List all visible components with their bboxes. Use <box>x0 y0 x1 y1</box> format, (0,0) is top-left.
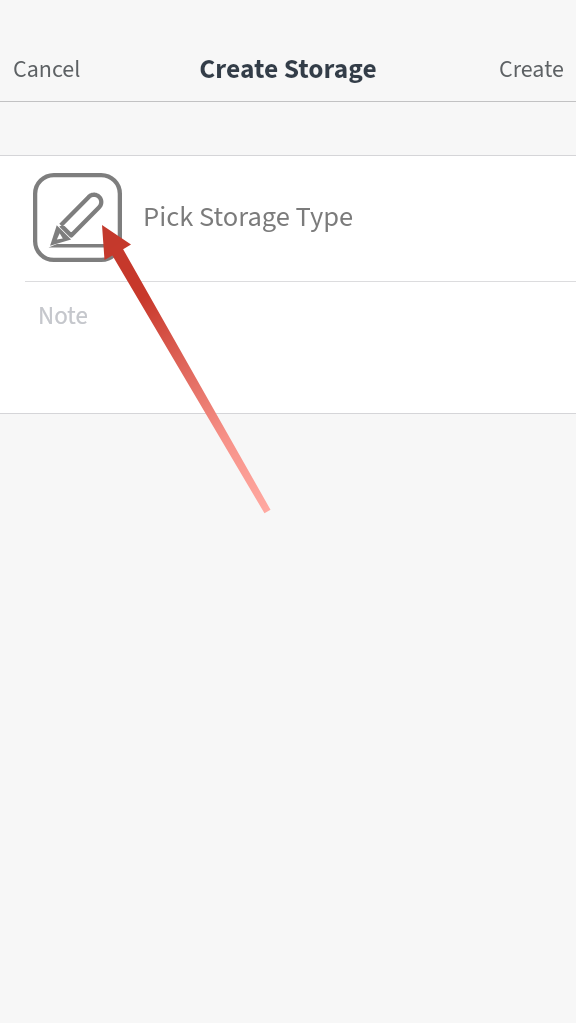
button[interactable]: Pick storage type <box>0 156 576 281</box>
staticText: Note <box>38 298 88 334</box>
staticText: Cancel <box>13 52 81 86</box>
staticText: Pick Storage Type <box>143 197 354 238</box>
staticText: Create Storage <box>199 50 377 89</box>
other: Pick storage type <box>33 173 122 262</box>
button[interactable]: Cancel <box>0 42 91 96</box>
staticText: Create <box>499 52 564 86</box>
button[interactable]: Note <box>0 282 576 413</box>
button[interactable]: Create <box>489 42 576 96</box>
